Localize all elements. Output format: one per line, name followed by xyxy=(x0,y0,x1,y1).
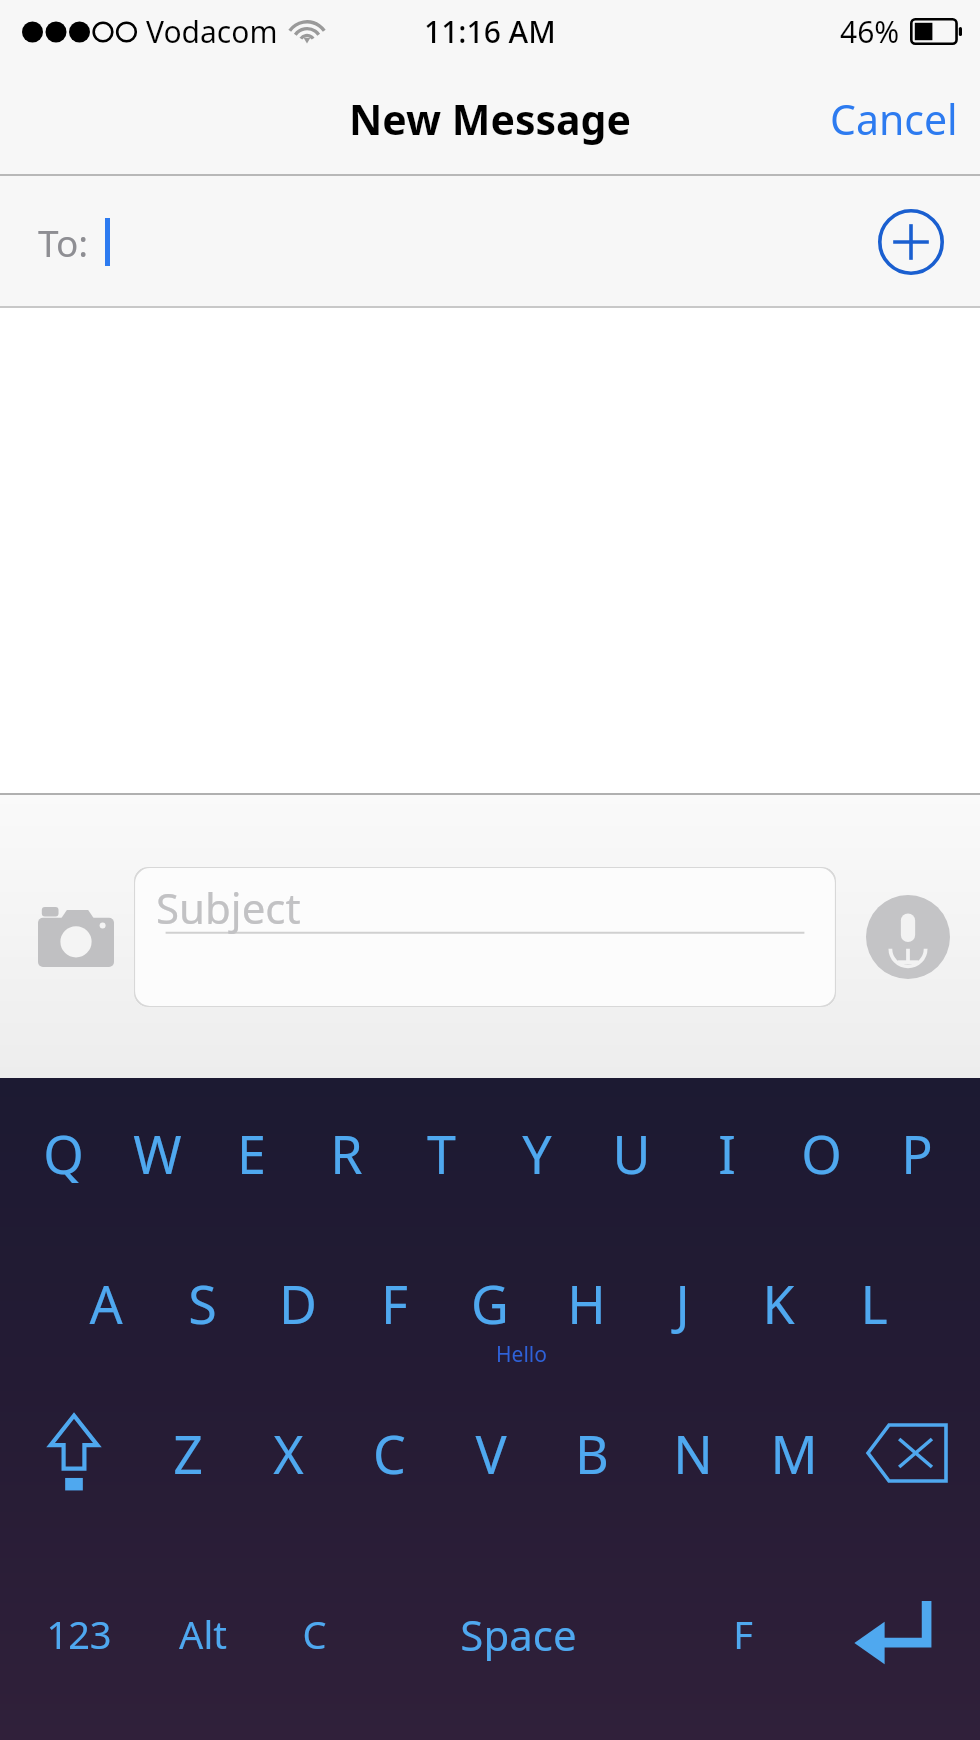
staticText: Q xyxy=(43,1118,84,1189)
staticText: E xyxy=(237,1118,266,1189)
staticText: H xyxy=(567,1268,606,1339)
button[interactable]: Add contact xyxy=(870,201,952,283)
button[interactable]: Dictate xyxy=(858,887,958,987)
staticText: Cancel xyxy=(830,91,958,147)
staticText: C xyxy=(302,1608,327,1660)
staticText: I xyxy=(718,1118,736,1189)
button[interactable]: Backspace xyxy=(844,1378,970,1528)
button[interactable]: A xyxy=(58,1228,154,1378)
button[interactable]: R xyxy=(299,1078,394,1228)
button[interactable]: Z xyxy=(137,1378,238,1528)
staticText: Z xyxy=(173,1418,203,1489)
button[interactable]: P xyxy=(869,1078,964,1228)
staticText: R xyxy=(330,1118,363,1189)
button[interactable]: Shift xyxy=(10,1378,137,1528)
button[interactable]: T xyxy=(394,1078,489,1228)
staticText: X xyxy=(273,1418,304,1489)
staticText: Alt xyxy=(179,1608,227,1660)
button[interactable]: J xyxy=(634,1228,730,1378)
button[interactable]: B xyxy=(541,1378,642,1528)
button[interactable]: Camera xyxy=(18,879,134,995)
button[interactable]: F xyxy=(668,1528,818,1740)
staticText: 46% xyxy=(840,11,900,52)
staticText: Space xyxy=(460,1606,577,1663)
button[interactable]: L xyxy=(826,1228,922,1378)
staticText: A xyxy=(89,1268,123,1339)
staticText: D xyxy=(279,1268,317,1339)
button[interactable]: Y xyxy=(489,1078,584,1228)
staticText: Vodacom xyxy=(146,11,278,52)
staticText: F xyxy=(733,1608,753,1660)
button[interactable]: O xyxy=(774,1078,869,1228)
button[interactable]: Subject xyxy=(134,867,836,1007)
button[interactable]: F xyxy=(346,1228,442,1378)
button[interactable]: H xyxy=(538,1228,634,1378)
staticText: N xyxy=(673,1418,713,1489)
button[interactable]: V xyxy=(440,1378,541,1528)
staticText: C xyxy=(373,1418,406,1489)
button[interactable]: W xyxy=(110,1078,204,1228)
button[interactable]: S xyxy=(154,1228,250,1378)
button[interactable]: K xyxy=(730,1228,826,1378)
staticText: T xyxy=(427,1118,456,1189)
button[interactable]: M xyxy=(743,1378,844,1528)
staticText: New Message xyxy=(349,91,631,147)
staticText: M xyxy=(770,1418,818,1489)
staticText: V xyxy=(475,1418,507,1489)
staticText: K xyxy=(762,1268,795,1339)
staticText: Subject xyxy=(156,879,301,936)
staticText: 123 xyxy=(46,1608,112,1660)
staticText: S xyxy=(188,1268,217,1339)
button[interactable]: U xyxy=(584,1078,679,1228)
staticText: 11:16 AM xyxy=(424,11,556,52)
button[interactable]: To: xyxy=(0,176,980,308)
button[interactable]: I xyxy=(679,1078,774,1228)
button[interactable]: N xyxy=(642,1378,743,1528)
staticText: F xyxy=(381,1268,408,1339)
button[interactable]: Cancel xyxy=(808,77,980,161)
button[interactable]: X xyxy=(238,1378,339,1528)
staticText: L xyxy=(860,1268,888,1339)
staticText: Hello xyxy=(496,1340,547,1369)
staticText: J xyxy=(675,1268,690,1339)
button[interactable]: G xyxy=(442,1228,538,1378)
staticText: Y xyxy=(522,1118,552,1189)
button[interactable]: C xyxy=(260,1528,369,1740)
button[interactable]: Q xyxy=(16,1078,110,1228)
button[interactable]: C xyxy=(339,1378,440,1528)
staticText: G xyxy=(471,1268,509,1339)
staticText: O xyxy=(801,1118,842,1189)
staticText: W xyxy=(133,1118,182,1189)
button[interactable]: 123 xyxy=(12,1528,145,1740)
staticText: U xyxy=(612,1118,651,1189)
button[interactable]: D xyxy=(250,1228,346,1378)
button[interactable]: E xyxy=(204,1078,299,1228)
staticText: B xyxy=(575,1418,609,1489)
staticText: To: xyxy=(38,217,89,267)
button[interactable]: Space xyxy=(369,1528,668,1740)
button[interactable]: Alt xyxy=(145,1528,260,1740)
button[interactable]: Return xyxy=(818,1528,968,1740)
staticText: P xyxy=(901,1118,933,1189)
